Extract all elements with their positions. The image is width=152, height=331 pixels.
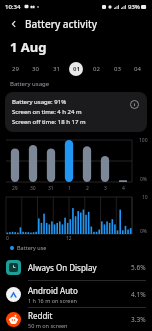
button[interactable]: 30 — [28, 62, 42, 76]
staticText: 0% — [140, 228, 148, 235]
staticText: 12 — [66, 235, 72, 242]
button[interactable]: Always On Display — [0, 254, 152, 280]
staticText: Screen off time: 18 h 17 m — [12, 118, 86, 126]
staticText: 50 m on screen — [28, 322, 68, 329]
button[interactable]: 31 — [49, 62, 63, 76]
button[interactable]: Back — [6, 16, 22, 32]
staticText: 01 — [73, 65, 80, 73]
button[interactable]: Information — [128, 98, 140, 110]
staticText: Battery activity — [25, 17, 98, 31]
button[interactable]: Android Auto — [0, 281, 152, 307]
staticText: 1 h 16 m on screen — [28, 297, 77, 304]
staticText: 4 — [122, 185, 125, 192]
staticText: 30 — [30, 185, 36, 192]
button[interactable]: 29 — [8, 62, 22, 76]
staticText: 03 — [114, 65, 121, 73]
staticText: 04 — [134, 65, 141, 73]
staticText: 29 — [12, 65, 19, 73]
staticText: Reddit — [28, 310, 53, 321]
staticText: 2 — [86, 185, 89, 192]
staticText: 93% — [128, 3, 140, 11]
staticText: 4.1% — [131, 290, 146, 299]
staticText: 10:34 — [5, 3, 21, 11]
staticText: Always On Display — [28, 262, 97, 273]
button[interactable]: 01 — [69, 62, 83, 76]
staticText: Android Auto — [28, 285, 78, 296]
staticText: 100 — [139, 137, 148, 144]
staticText: 0% — [140, 176, 148, 183]
staticText: Screen on time: 4 h 24 m — [12, 108, 82, 116]
staticText: Battery usage — [10, 80, 50, 88]
staticText: 5.6% — [131, 263, 146, 272]
button[interactable]: Reddit — [0, 308, 152, 331]
button[interactable]: Battery usage: 91% — [5, 92, 147, 132]
staticText: 02 — [93, 65, 100, 73]
staticText: 1 Aug — [10, 38, 47, 56]
staticText: 31 — [53, 65, 60, 73]
staticText: 3.3% — [131, 315, 146, 324]
staticText: 31 — [48, 185, 54, 192]
staticText: 1 — [68, 185, 71, 192]
button[interactable]: 02 — [89, 62, 103, 76]
button[interactable]: 04 — [130, 62, 144, 76]
staticText: 3 — [104, 185, 107, 192]
staticText: 29 — [12, 185, 18, 192]
staticText: 0 — [6, 235, 9, 242]
staticText: Battery usage: 91% — [12, 98, 67, 106]
staticText: 10 — [142, 194, 148, 201]
button[interactable]: 03 — [110, 62, 124, 76]
staticText: Battery use — [17, 244, 47, 251]
staticText: 30 — [32, 65, 39, 73]
